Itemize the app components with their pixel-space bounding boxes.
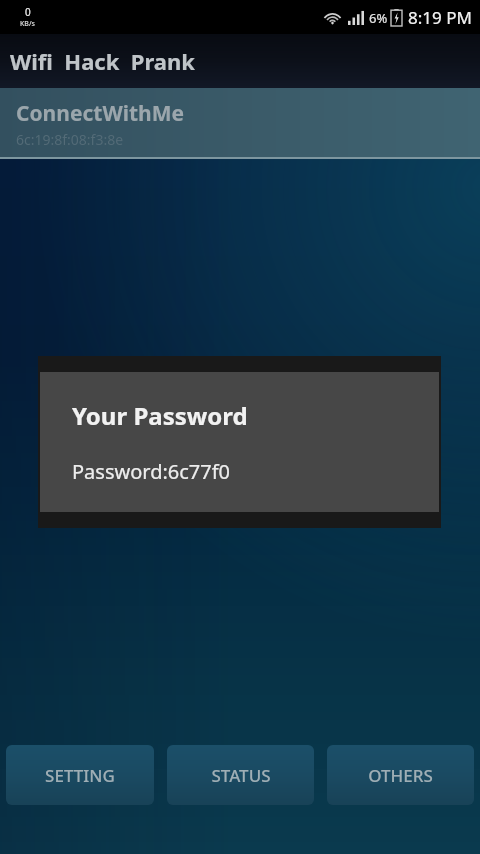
button[interactable]: OTHERS bbox=[327, 745, 474, 805]
staticText: 0 bbox=[25, 5, 31, 19]
staticText: Password:6c77f0 bbox=[72, 458, 231, 485]
staticText: KB/s bbox=[20, 19, 35, 29]
staticText: SETTING bbox=[45, 764, 115, 787]
staticText: ConnectWithMe bbox=[16, 99, 185, 128]
staticText: 8:19 PM bbox=[408, 6, 472, 29]
button[interactable]: ConnectWithMe bbox=[0, 88, 480, 159]
staticText: 6c:19:8f:08:f3:8e bbox=[16, 130, 124, 149]
staticText: OTHERS bbox=[368, 764, 433, 787]
staticText: STATUS bbox=[211, 764, 271, 787]
button[interactable]: STATUS bbox=[167, 745, 314, 805]
staticText: 6% bbox=[369, 9, 388, 27]
staticText: Your Password bbox=[72, 399, 248, 432]
button[interactable]: SETTING bbox=[6, 745, 154, 805]
staticText: Wifi Hack Prank bbox=[10, 46, 195, 76]
